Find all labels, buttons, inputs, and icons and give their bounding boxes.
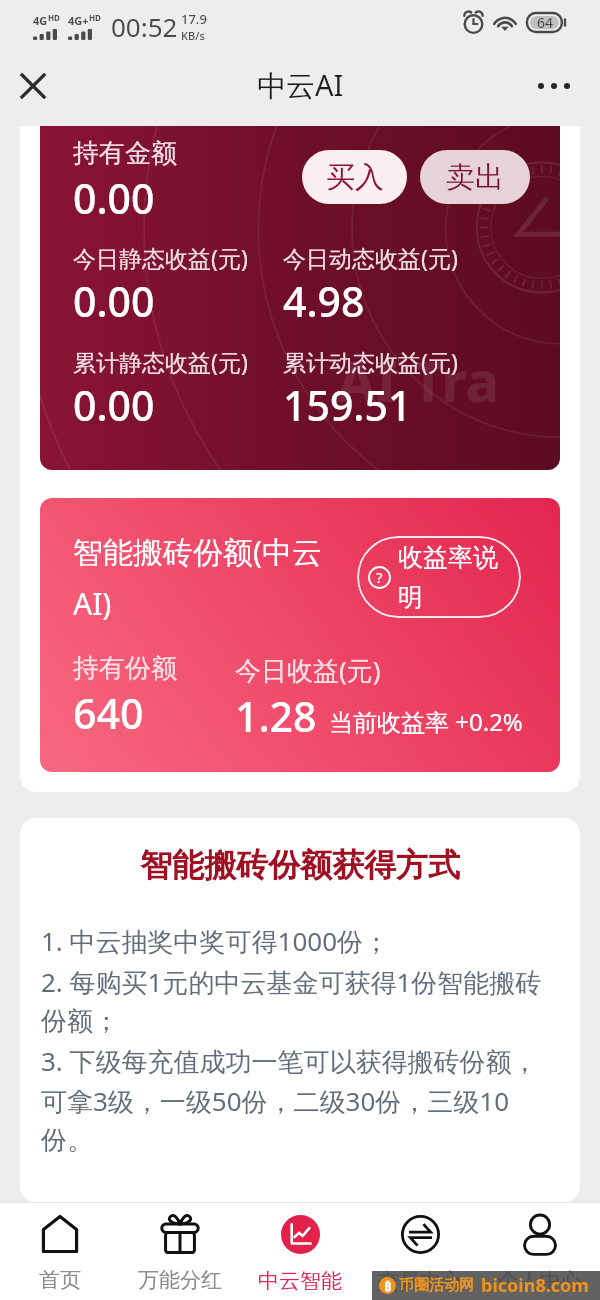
staticText: ?: [376, 567, 383, 587]
staticText: KB/s: [181, 28, 205, 43]
staticText: 4G: [33, 13, 48, 28]
staticText: 持有份额: [73, 652, 177, 685]
staticText: 今日动态收益(元): [283, 242, 458, 273]
staticText: 卖出: [446, 159, 504, 196]
button[interactable]: Close: [8, 61, 58, 111]
button[interactable]: More options: [528, 60, 580, 112]
staticText: bicoin8.com: [481, 1273, 589, 1298]
button[interactable]: 交易中心: [360, 1203, 480, 1294]
staticText: 4G+: [68, 13, 89, 28]
button[interactable]: 卖出: [420, 150, 530, 204]
staticText: 收益率说明: [398, 542, 513, 613]
button[interactable]: 个人中心: [480, 1203, 600, 1294]
staticText: 交易中心: [378, 1268, 462, 1294]
staticText: 智能搬砖份额获得方式: [41, 845, 559, 885]
staticText: 首页: [39, 1267, 81, 1293]
staticText: AI Tra: [337, 342, 500, 418]
staticText: 0.00: [73, 273, 155, 329]
staticText: 640: [73, 685, 144, 741]
staticText: 累计动态收益(元): [283, 346, 458, 377]
staticText: 个人中心: [498, 1268, 582, 1294]
staticText: 中云AI: [257, 65, 344, 105]
button[interactable]: 首页: [0, 1203, 120, 1293]
staticText: 智能搬砖份额(中云AI): [73, 531, 339, 624]
staticText: 64: [537, 13, 554, 32]
button[interactable]: 买入: [302, 150, 407, 204]
staticText: 买入: [326, 159, 384, 196]
staticText: HD: [89, 12, 101, 23]
staticText: 累计静态收益(元): [73, 346, 248, 377]
button[interactable]: 中云智能: [240, 1203, 360, 1294]
staticText: 00:52: [111, 9, 178, 44]
staticText: 币圈活动网: [399, 1276, 474, 1295]
staticText: 17.9: [181, 10, 207, 28]
staticText: 0.00: [73, 377, 155, 433]
button[interactable]: 万能分红: [120, 1203, 240, 1293]
staticText: 159.51: [283, 377, 412, 433]
staticText: 1. 中云抽奖中奖可得1000份； 2. 每购买1元的中云基金可获得1份智能搬砖…: [41, 923, 559, 1157]
staticText: ₿: [384, 1277, 392, 1294]
staticText: 中云智能: [258, 1268, 342, 1294]
staticText: HD: [48, 12, 60, 23]
staticText: 今日静态收益(元): [73, 242, 248, 273]
staticText: 当前收益率 +0.2%: [329, 705, 525, 738]
staticText: 持有金额: [73, 137, 177, 170]
staticText: 4.98: [283, 273, 365, 329]
staticText: 1.28: [235, 688, 317, 744]
button[interactable]: ?: [357, 536, 521, 618]
staticText: 万能分红: [138, 1267, 222, 1293]
staticText: 今日收益(元): [235, 652, 381, 688]
staticText: 0.00: [73, 170, 155, 226]
